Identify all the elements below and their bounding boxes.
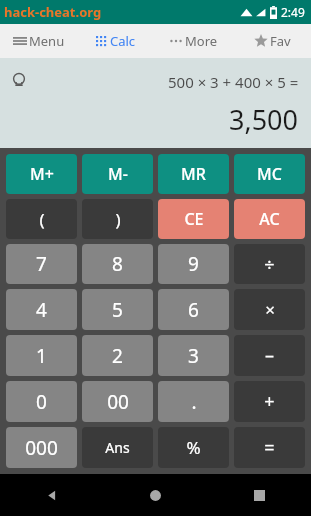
staticText: 9 <box>188 251 199 277</box>
staticText: . <box>191 389 197 415</box>
button[interactable]: 3 <box>158 335 229 376</box>
staticText: × <box>265 298 275 321</box>
staticText: 5 <box>112 297 123 323</box>
button[interactable]: 2 <box>82 335 153 376</box>
staticText: AC <box>259 208 280 230</box>
staticText: 4 <box>36 297 47 323</box>
staticText: + <box>264 389 275 414</box>
staticText: MC <box>257 163 282 185</box>
staticText: ( <box>39 208 45 231</box>
button[interactable]: 6 <box>158 289 229 330</box>
staticText: – <box>265 343 274 368</box>
staticText: 500 × 3 + 400 × 5 = <box>168 72 299 92</box>
button[interactable]: MR <box>158 154 229 194</box>
button[interactable]: Ans <box>82 427 153 468</box>
button[interactable]: 9 <box>158 244 229 284</box>
button[interactable]: 8 <box>82 244 153 284</box>
button[interactable]: – <box>234 335 305 376</box>
staticText: 3 <box>188 343 199 369</box>
staticText: Menu <box>29 32 65 50</box>
button[interactable]: 000 <box>6 427 77 468</box>
staticText: 0 <box>36 389 47 415</box>
staticText: ) <box>115 208 121 231</box>
button[interactable]: AC <box>234 199 305 239</box>
button[interactable]: . <box>158 381 229 422</box>
button[interactable]: Calc <box>77 24 155 58</box>
button[interactable]: 4 <box>6 289 77 330</box>
staticText: 8 <box>112 251 123 277</box>
staticText: 1 <box>36 343 47 369</box>
button[interactable]: + <box>234 381 305 422</box>
staticText: 2 <box>112 343 123 369</box>
button[interactable]: ( <box>6 199 77 239</box>
button[interactable]: % <box>158 427 229 468</box>
button[interactable]: M- <box>82 154 153 194</box>
button[interactable]: ) <box>82 199 153 239</box>
button[interactable]: 1 <box>6 335 77 376</box>
button[interactable]: Home <box>103 474 207 516</box>
button[interactable]: 7 <box>6 244 77 284</box>
staticText: % <box>186 436 201 459</box>
staticText: = <box>264 435 275 460</box>
staticText: 2:49 <box>281 4 305 20</box>
button[interactable]: = <box>234 427 305 468</box>
staticText: hack-cheat.org <box>4 3 102 21</box>
button[interactable]: M+ <box>6 154 77 194</box>
button[interactable]: 0 <box>6 381 77 422</box>
staticText: Fav <box>270 32 291 50</box>
button[interactable]: × <box>234 289 305 330</box>
staticText: 7 <box>36 251 47 277</box>
staticText: More <box>185 32 218 50</box>
staticText: MR <box>181 163 206 185</box>
staticText: 000 <box>25 435 58 461</box>
staticText: CE <box>184 208 204 230</box>
button[interactable]: 5 <box>82 289 153 330</box>
button[interactable]: MC <box>234 154 305 194</box>
button[interactable]: Recent apps <box>207 474 311 516</box>
button[interactable]: Menu <box>0 24 77 58</box>
staticText: 6 <box>188 297 199 323</box>
button[interactable]: 00 <box>82 381 153 422</box>
button[interactable]: More <box>155 24 233 58</box>
button[interactable]: Fav <box>233 24 311 58</box>
staticText: 00 <box>107 389 129 415</box>
staticText: M- <box>108 163 128 185</box>
staticText: M+ <box>30 163 54 185</box>
staticText: Ans <box>105 438 130 457</box>
staticText: Calc <box>110 32 136 50</box>
button[interactable]: Back <box>0 474 103 516</box>
staticText: 3,500 <box>229 101 299 138</box>
button[interactable]: CE <box>158 199 229 239</box>
button[interactable]: Hint <box>10 72 28 90</box>
button[interactable]: ÷ <box>234 244 305 284</box>
staticText: ÷ <box>264 252 275 277</box>
